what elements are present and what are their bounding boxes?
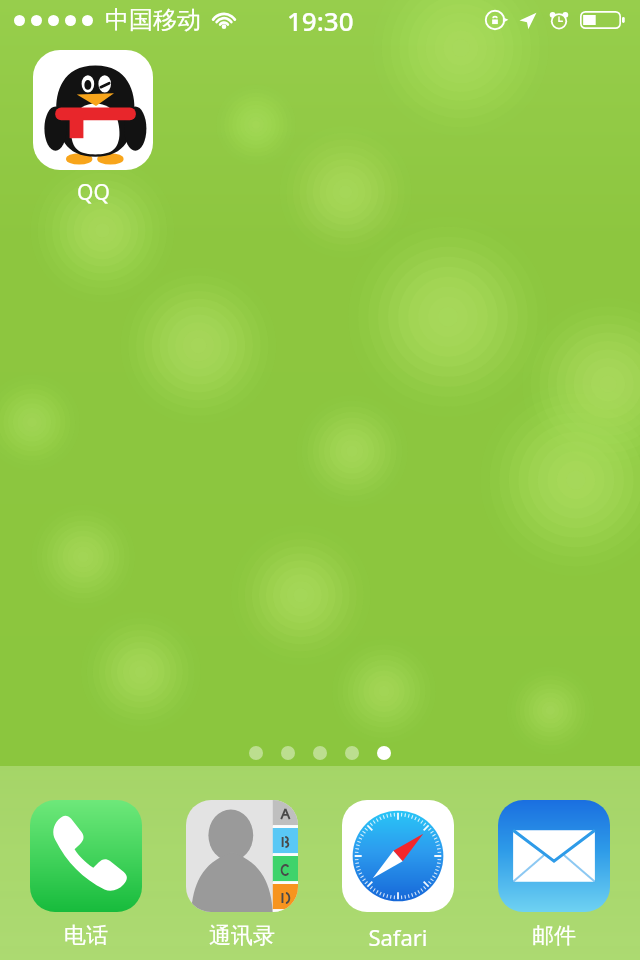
staticText: 通讯录 — [209, 922, 275, 950]
button[interactable]: QQ — [28, 50, 158, 207]
staticText: 中国移动 — [105, 5, 201, 35]
staticText: 邮件 — [532, 922, 576, 950]
staticText: Safari — [368, 922, 428, 952]
button[interactable]: Safari — [328, 800, 468, 952]
button[interactable]: 电话 — [16, 800, 156, 950]
button[interactable]: 通讯录 — [172, 800, 312, 950]
button[interactable]: 邮件 — [484, 800, 624, 950]
staticText: 电话 — [64, 922, 108, 950]
staticText: QQ — [77, 178, 110, 207]
staticText: 19:30 — [287, 3, 354, 38]
